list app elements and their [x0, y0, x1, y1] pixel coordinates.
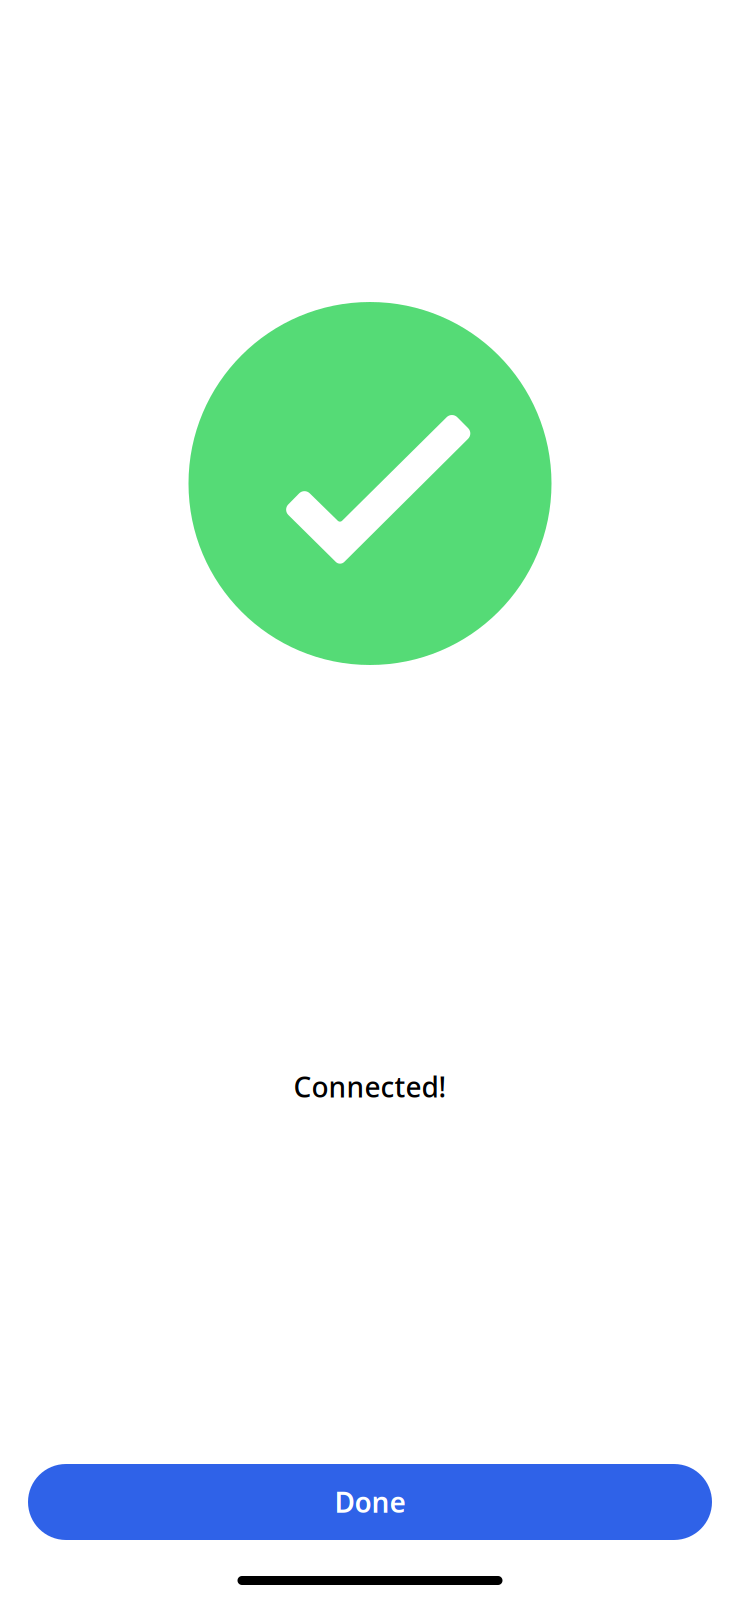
staticText: Connected! [293, 1068, 446, 1105]
staticText: Done [334, 1483, 405, 1521]
button[interactable]: Done [28, 1464, 712, 1540]
